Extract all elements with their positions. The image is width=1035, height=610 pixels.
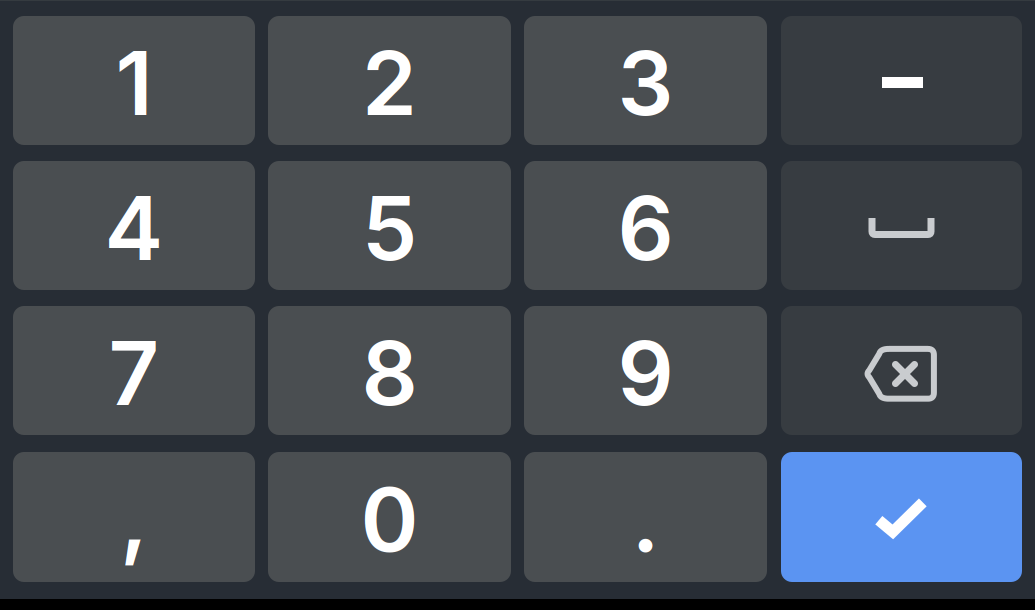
button[interactable]: 9	[524, 306, 767, 435]
staticText: 3	[617, 30, 673, 136]
staticText: 1	[115, 30, 152, 136]
button[interactable]: 1	[13, 16, 255, 145]
button[interactable]: Minus	[781, 16, 1022, 145]
button[interactable]: 3	[524, 16, 767, 145]
staticText: 8	[361, 320, 417, 426]
staticText: 5	[362, 175, 417, 281]
button[interactable]: Done	[781, 452, 1022, 582]
staticText: 7	[108, 320, 159, 426]
button[interactable]: 7	[13, 306, 255, 435]
staticText: 0	[360, 466, 418, 573]
button[interactable]: 5	[268, 161, 511, 290]
staticText: 6	[617, 175, 673, 281]
button[interactable]: 4	[13, 161, 255, 290]
staticText: ,	[120, 463, 148, 570]
button[interactable]: 2	[268, 16, 511, 145]
button[interactable]: 0	[268, 452, 511, 582]
staticText: 9	[617, 320, 673, 426]
button[interactable]: 8	[268, 306, 511, 435]
button[interactable]: ,	[13, 452, 255, 582]
staticText: 2	[362, 30, 417, 136]
button[interactable]: .	[524, 452, 767, 582]
button[interactable]: Space	[781, 161, 1022, 290]
staticText: 4	[104, 175, 163, 281]
button[interactable]: 6	[524, 161, 767, 290]
staticText: .	[631, 466, 659, 573]
button[interactable]: Delete	[781, 306, 1022, 435]
